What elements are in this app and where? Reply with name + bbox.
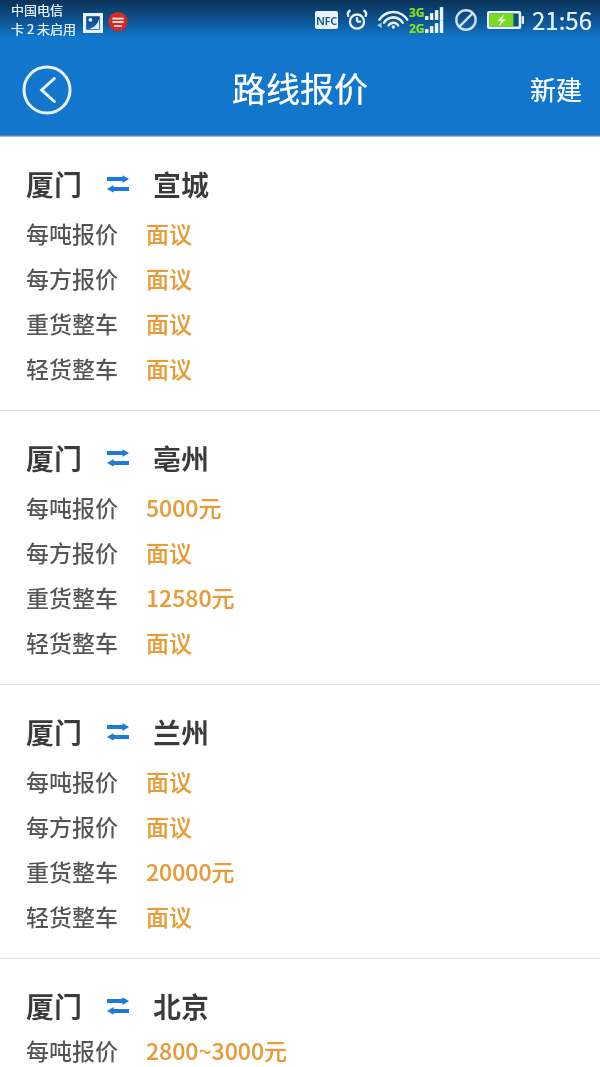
button[interactable]: 厦门 [0,685,600,958]
staticText: 面议 [146,261,192,294]
staticText: 每方报价 [26,535,118,568]
button[interactable]: Back [18,61,76,119]
staticText: 面议 [146,809,192,842]
staticText: 厦门 [26,164,83,205]
staticText: 厦门 [26,712,83,753]
staticText: 轻货整车 [26,625,118,658]
button[interactable]: 厦门 [0,411,600,684]
staticText: 每方报价 [26,809,118,842]
staticText: 每吨报价 [26,1033,118,1066]
staticText: 重货整车 [26,854,118,887]
staticText: 面议 [146,899,192,932]
staticText: 中国电信 [11,0,64,19]
staticText: 重货整车 [26,580,118,613]
staticText: 厦门 [26,986,83,1027]
staticText: 每吨报价 [26,216,118,249]
button[interactable]: 新建 [510,56,600,122]
staticText: 重货整车 [26,306,118,339]
staticText: 每方报价 [26,261,118,294]
staticText: 卡 2 未启用 [11,19,77,38]
staticText: 面议 [146,351,192,384]
staticText: 面议 [146,535,192,568]
staticText: 面议 [146,216,192,249]
staticText: 3G [409,4,425,20]
staticText: 每吨报价 [26,490,118,523]
staticText: 兰州 [153,712,210,753]
staticText: 面议 [146,764,192,797]
staticText: 面议 [146,306,192,339]
staticText: 北京 [153,986,210,1027]
staticText: 轻货整车 [26,351,118,384]
staticText: 21:56 [532,2,592,37]
button[interactable]: 厦门 [0,959,600,1067]
staticText: 宣城 [153,164,210,205]
staticText: 厦门 [26,438,83,479]
staticText: 20000元 [146,854,235,887]
staticText: 12580元 [146,580,235,613]
staticText: 2G [409,20,425,36]
button[interactable]: 厦门 [0,137,600,410]
staticText: 5000元 [146,490,222,523]
staticText: 轻货整车 [26,899,118,932]
staticText: 路线报价 [232,63,368,112]
staticText: NFC [316,13,337,28]
staticText: 每吨报价 [26,764,118,797]
staticText: 新建 [530,70,583,108]
staticText: 面议 [146,625,192,658]
staticText: 亳州 [153,438,210,479]
staticText: 2800~3000元 [146,1033,287,1066]
